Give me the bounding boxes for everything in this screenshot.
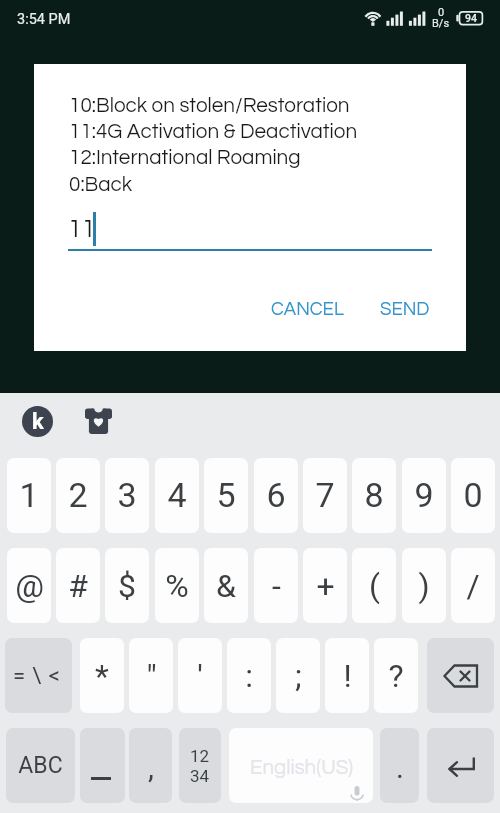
staticText: ( [369, 567, 380, 605]
staticText: . [396, 750, 404, 785]
staticText: 0:Back [69, 174, 133, 195]
staticText: + [316, 567, 335, 605]
staticText: English(US) [250, 757, 354, 778]
button[interactable]: 2 [56, 458, 100, 533]
button[interactable]: 6 [254, 458, 298, 533]
staticText: CANCEL [271, 300, 344, 319]
staticText: ? [388, 657, 404, 695]
button[interactable]: : [227, 638, 271, 713]
staticText: 2 [68, 475, 88, 515]
button[interactable]: 0 [451, 458, 495, 533]
staticText: - [272, 567, 281, 605]
staticText: 10:Block on stolen/Restoration [69, 95, 350, 116]
button[interactable]: Space [229, 728, 373, 803]
staticText: # [68, 567, 88, 605]
button[interactable]: / [451, 548, 495, 623]
button[interactable]: ' [178, 638, 222, 713]
button[interactable]: Backspace [427, 638, 494, 713]
button[interactable]: ABC [6, 728, 75, 803]
button[interactable]: Stickers [85, 408, 112, 434]
staticText: & [216, 567, 236, 605]
staticText: : [245, 657, 253, 695]
button[interactable]: 5 [204, 458, 248, 533]
staticText: =\< [13, 663, 68, 689]
button[interactable]: Keyboard settings [22, 406, 53, 437]
staticText: SEND [380, 300, 430, 319]
button[interactable]: 7 [303, 458, 347, 533]
staticText: 12:International Roaming [69, 147, 301, 168]
staticText: 3 [117, 475, 137, 515]
staticText: 8 [364, 475, 384, 515]
button[interactable]: ? [374, 638, 418, 713]
staticText: 0 [463, 475, 483, 515]
button[interactable]: 9 [402, 458, 446, 533]
button[interactable]: 3 [105, 458, 149, 533]
staticText: 1 [19, 475, 39, 515]
button[interactable]: 8 [352, 458, 396, 533]
staticText: $ [118, 567, 136, 605]
button[interactable]: =\< [5, 638, 72, 713]
staticText: 9 [414, 475, 434, 515]
staticText: ' [197, 657, 203, 695]
staticText: 5 [216, 475, 236, 515]
staticText: " [146, 657, 157, 695]
button[interactable]: . [380, 728, 419, 803]
button[interactable]: @ [7, 548, 51, 623]
button[interactable]: Enter [427, 728, 494, 803]
staticText: ABC [18, 752, 63, 779]
staticText: % [165, 567, 189, 605]
staticText: 7 [315, 475, 335, 515]
button[interactable]: Underscore [80, 728, 125, 803]
button[interactable]: # [56, 548, 100, 623]
button[interactable]: 4 [155, 458, 199, 533]
button[interactable]: - [254, 548, 298, 623]
staticText: ; [295, 657, 302, 695]
staticText: 4 [167, 475, 187, 515]
staticText: k [32, 409, 44, 435]
staticText: 6 [266, 475, 286, 515]
button[interactable]: " [129, 638, 173, 713]
button[interactable]: $ [105, 548, 149, 623]
button[interactable]: SEND [372, 292, 438, 327]
staticText: 94 [465, 12, 477, 24]
button[interactable]: ; [276, 638, 320, 713]
staticText: / [466, 567, 480, 605]
staticText: , [148, 750, 154, 785]
staticText: 11 [68, 216, 96, 242]
button[interactable]: , [129, 728, 172, 803]
button[interactable]: & [204, 548, 248, 623]
staticText: 12 [190, 746, 210, 766]
button[interactable]: + [303, 548, 347, 623]
button[interactable]: ( [352, 548, 396, 623]
button[interactable]: * [80, 638, 124, 713]
staticText: ! [343, 657, 352, 695]
staticText: 0 [438, 6, 445, 19]
button[interactable]: 1 [7, 458, 51, 533]
button[interactable]: % [155, 548, 199, 623]
staticText: ) [418, 567, 430, 605]
button[interactable]: Number keypad [179, 728, 221, 803]
button[interactable]: CANCEL [263, 292, 352, 327]
button[interactable]: ! [325, 638, 369, 713]
staticText: @ [15, 567, 44, 605]
staticText: B/s [432, 17, 450, 30]
staticText: 11:4G Activation & Deactivation [69, 121, 358, 142]
staticText: 3:54 PM [17, 11, 71, 28]
staticText: 34 [190, 766, 210, 786]
staticText: * [95, 657, 109, 695]
button[interactable]: ) [402, 548, 446, 623]
